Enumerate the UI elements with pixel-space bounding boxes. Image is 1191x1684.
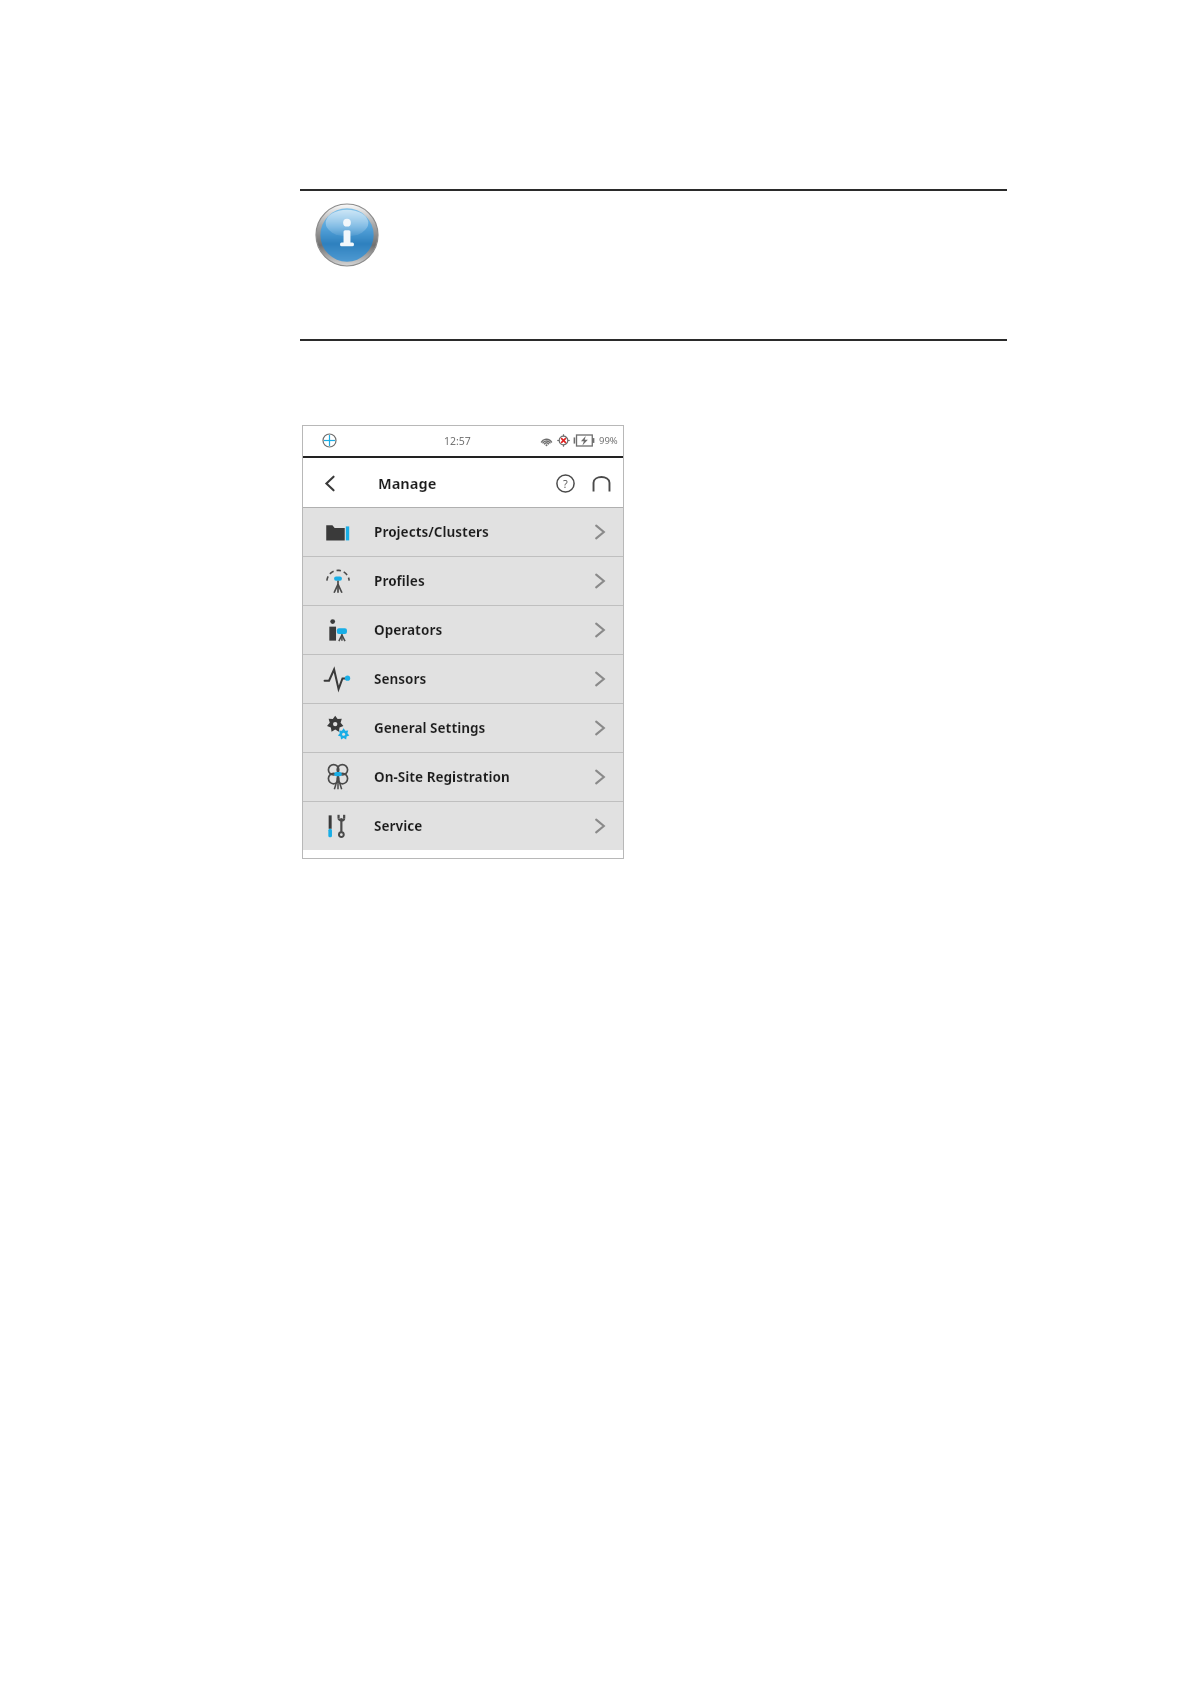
staticText: Operators: [374, 621, 443, 639]
staticText: Service: [374, 817, 423, 835]
staticText: General Settings: [374, 719, 486, 737]
button[interactable]: Sensors: [302, 655, 624, 703]
staticText: ?: [563, 476, 568, 491]
button[interactable]: On-Site Registration: [302, 753, 624, 801]
staticText: 99%: [599, 434, 618, 447]
staticText: Profiles: [374, 572, 425, 590]
button[interactable]: Profiles: [302, 557, 624, 605]
button[interactable]: Back: [314, 467, 346, 499]
button[interactable]: Projects/Clusters: [302, 508, 624, 556]
staticText: On-Site Registration: [374, 768, 510, 786]
staticText: Projects/Clusters: [374, 523, 489, 541]
button[interactable]: Operators: [302, 606, 624, 654]
staticText: 12:57: [444, 434, 471, 448]
button[interactable]: General Settings: [302, 704, 624, 752]
staticText: Sensors: [374, 670, 427, 688]
button[interactable]: Home: [588, 470, 614, 496]
button[interactable]: Help: [552, 470, 578, 496]
staticText: Manage: [378, 473, 437, 493]
button[interactable]: Service: [302, 802, 624, 850]
